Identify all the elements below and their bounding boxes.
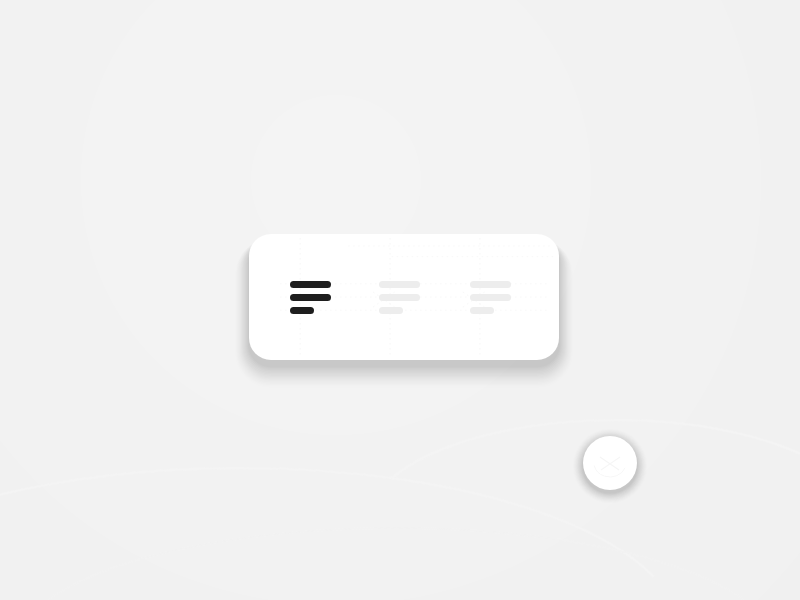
button[interactable]: Action [583,436,637,490]
button[interactable] [249,234,559,360]
